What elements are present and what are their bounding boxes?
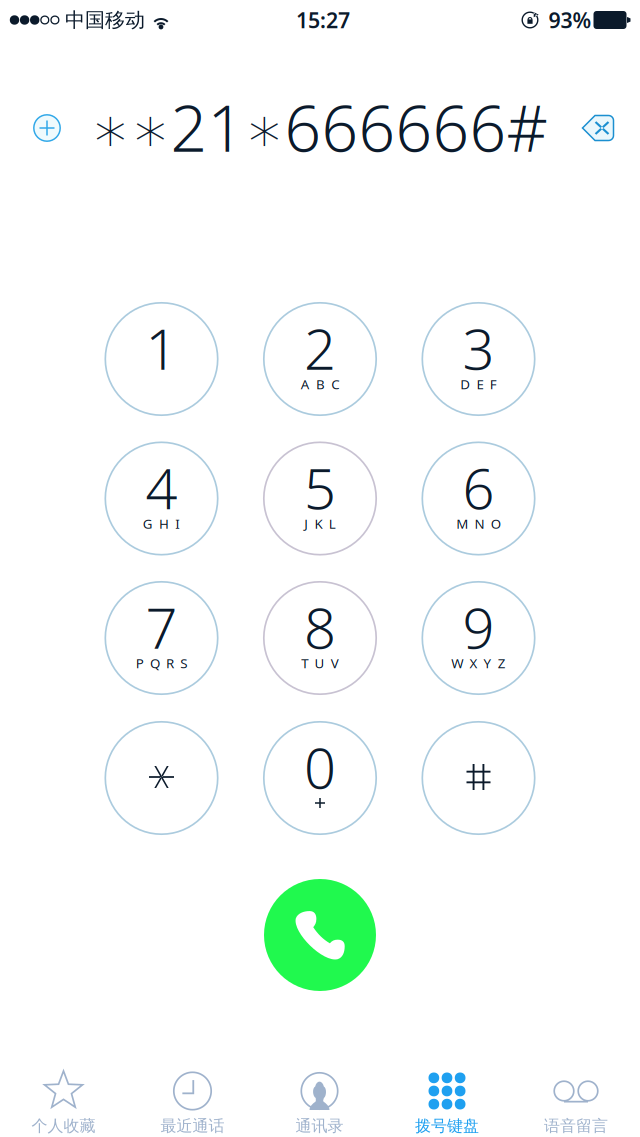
button[interactable]: star xyxy=(104,721,218,835)
staticText: 5 xyxy=(304,450,336,525)
staticText: 个人收藏 xyxy=(31,1116,95,1136)
button[interactable]: 4 xyxy=(104,441,218,555)
button[interactable]: 8 xyxy=(263,581,377,695)
button[interactable]: Call xyxy=(264,879,376,991)
button[interactable]: 9 xyxy=(421,581,535,695)
staticText: W X Y Z xyxy=(451,654,506,672)
staticText: 1 xyxy=(145,311,177,385)
button[interactable]: 语音留言 xyxy=(512,1061,640,1137)
staticText: 最近通话 xyxy=(160,1116,224,1136)
staticText: 0 xyxy=(304,730,336,804)
button[interactable]: 5 xyxy=(263,441,377,555)
staticText: 15:27 xyxy=(296,6,350,34)
button[interactable]: pound xyxy=(421,721,535,835)
button[interactable]: Delete xyxy=(570,102,626,154)
staticText: 7 xyxy=(145,590,177,664)
staticText: 3 xyxy=(462,311,494,385)
staticText: 语音留言 xyxy=(544,1116,608,1136)
button[interactable]: 6 xyxy=(421,441,535,555)
staticText: 4 xyxy=(145,450,177,525)
button[interactable]: 个人收藏 xyxy=(0,1061,127,1137)
button[interactable]: 最近通话 xyxy=(128,1061,256,1137)
staticText: D E F xyxy=(460,375,497,393)
staticText: A B C xyxy=(301,375,339,393)
staticText: 6 xyxy=(462,450,494,525)
button[interactable]: 通讯录 xyxy=(255,1061,383,1137)
staticText: G H I xyxy=(143,515,180,532)
button[interactable]: 7 xyxy=(104,581,218,695)
staticText: P Q R S xyxy=(136,654,187,672)
staticText: 中国移动 xyxy=(65,8,145,32)
staticText: ∗∗21∗666666# xyxy=(90,84,547,169)
staticText: 拨号键盘 xyxy=(415,1116,479,1136)
button[interactable]: 拨号键盘 xyxy=(383,1061,511,1137)
staticText: 9 xyxy=(462,590,494,664)
staticText: 2 xyxy=(304,311,336,385)
staticText: M N O xyxy=(456,515,501,532)
button[interactable]: Add number xyxy=(21,102,73,154)
staticText: 通讯录 xyxy=(295,1116,343,1136)
staticText: 8 xyxy=(304,590,336,664)
staticText: J K L xyxy=(304,515,336,532)
staticText: T U V xyxy=(301,654,339,672)
button[interactable]: 3 xyxy=(421,302,535,416)
staticText: 93% xyxy=(548,6,591,34)
button[interactable]: 0 plus xyxy=(263,721,377,835)
button[interactable]: 2 xyxy=(263,302,377,416)
button[interactable]: 1 xyxy=(104,302,218,416)
